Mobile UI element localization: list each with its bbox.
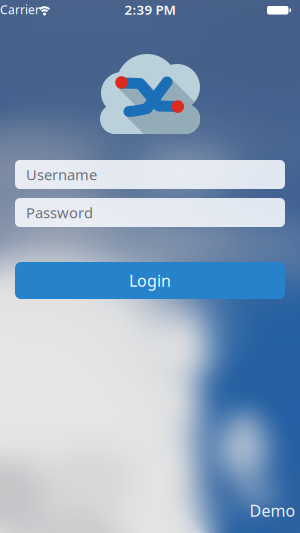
staticText: 2:39 PM <box>124 1 175 18</box>
staticText: Carrier <box>0 1 40 17</box>
button[interactable]: Password text field <box>15 198 285 227</box>
button[interactable]: Username text field <box>15 160 285 189</box>
button[interactable]: Demo <box>249 500 295 521</box>
staticText: Demo <box>249 500 295 521</box>
button[interactable]: Login <box>15 262 285 299</box>
staticText: Username <box>26 165 97 184</box>
staticText: Login <box>129 270 171 291</box>
staticText: Password <box>26 203 93 222</box>
